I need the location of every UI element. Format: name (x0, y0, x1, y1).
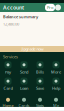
staticText: Card (3, 86, 12, 91)
button[interactable]: Help (48, 78, 64, 91)
staticText: Upgrade now (20, 46, 43, 52)
button[interactable]: Pro (45, 4, 55, 11)
button[interactable]: Pay (0, 61, 16, 75)
button[interactable]: Stats (32, 98, 48, 108)
staticText: Balance summary (3, 14, 38, 19)
staticText: Loan (20, 86, 28, 91)
staticText: Help (52, 86, 60, 91)
staticText: Send (20, 69, 28, 75)
staticText: 12,480.00 (3, 21, 19, 27)
staticText: Me (53, 103, 59, 108)
button[interactable]: Me (48, 98, 64, 108)
staticText: Account (3, 4, 24, 11)
button[interactable]: Home (0, 98, 16, 108)
staticText: Pay (5, 69, 11, 75)
button[interactable]: Send (16, 61, 32, 75)
button[interactable]: Save (32, 78, 48, 91)
button[interactable]: Loan (16, 78, 32, 91)
button[interactable]: Card (0, 78, 16, 91)
staticText: Pro (47, 5, 53, 10)
staticText: Services (3, 54, 18, 59)
staticText: Bills (36, 69, 44, 75)
button[interactable]: Bills (32, 61, 48, 75)
staticText: Home (2, 103, 13, 108)
button[interactable]: More (48, 61, 64, 75)
button[interactable]: Cards (16, 98, 32, 108)
staticText: Save (36, 86, 44, 91)
staticText: Stats (36, 103, 44, 108)
button[interactable]: Profile (55, 4, 61, 10)
staticText: More (51, 69, 61, 75)
staticText: Cards (18, 103, 29, 108)
